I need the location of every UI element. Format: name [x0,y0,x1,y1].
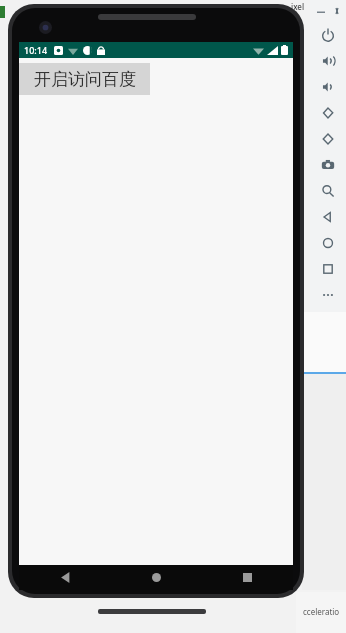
button[interactable]: 开启访问百度 [19,63,150,95]
button[interactable]: Recent apps [202,565,293,590]
button[interactable]: Volume up [310,48,346,74]
button[interactable]: Home [111,565,202,590]
button[interactable]: Back [19,565,111,590]
staticText: 开启访问百度 [34,69,136,90]
button[interactable]: Volume down [310,74,346,100]
staticText: cceleratio [303,606,340,617]
button[interactable]: Minimize [316,6,326,16]
button[interactable]: Zoom [310,178,346,204]
staticText: ixel [291,1,305,12]
button[interactable]: Back [310,204,346,230]
button[interactable]: Overview [310,256,346,282]
button[interactable]: Rotate left [310,100,346,126]
button[interactable]: More [310,282,346,308]
button[interactable]: Power [310,22,346,48]
button[interactable]: Rotate right [310,126,346,152]
button[interactable]: Close [334,6,340,16]
staticText: 10:14 [24,44,48,56]
button[interactable]: Screenshot [310,152,346,178]
button[interactable]: Home [310,230,346,256]
